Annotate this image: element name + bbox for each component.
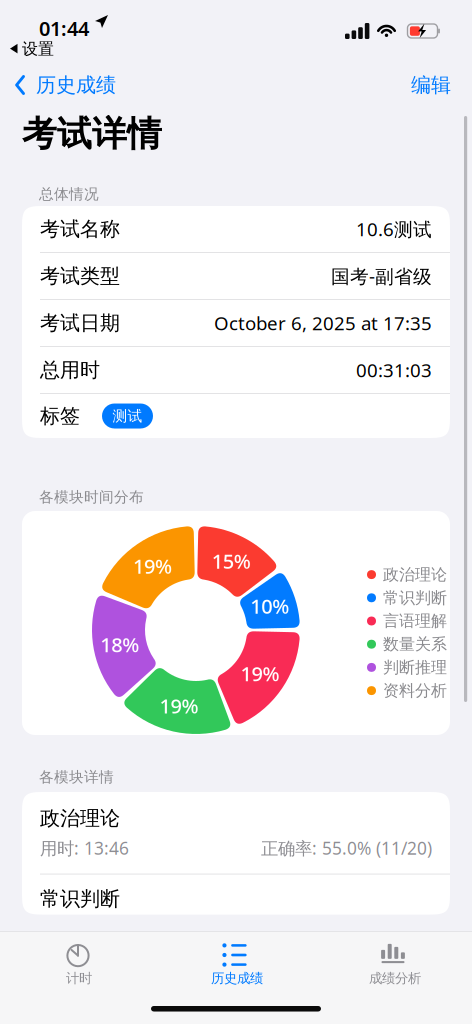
staticText: 考试名称 xyxy=(40,217,120,241)
staticText: 标签 xyxy=(40,404,80,428)
staticText: 10% xyxy=(250,593,289,619)
staticText: 00:31:03 xyxy=(356,358,432,382)
staticText: 15% xyxy=(212,548,251,574)
staticText: 政治理论 xyxy=(383,565,447,584)
staticText: 判断推理 xyxy=(383,658,447,677)
staticText: 历史成绩 xyxy=(211,970,263,986)
staticText: 18% xyxy=(100,631,139,658)
staticText: 历史成绩 xyxy=(36,73,116,97)
staticText: 国考-副省级 xyxy=(331,264,432,288)
staticText: 计时 xyxy=(66,970,92,986)
staticText: 测试 xyxy=(112,407,142,425)
staticText: 编辑 xyxy=(411,73,451,97)
staticText: 用时: 13:46 xyxy=(40,837,129,860)
staticText: 总用时 xyxy=(40,358,100,382)
staticText: 考试类型 xyxy=(40,264,120,288)
staticText: 19% xyxy=(241,660,280,687)
staticText: 言语理解 xyxy=(383,611,447,631)
staticText: 成绩分析 xyxy=(369,970,421,986)
staticText: 考试日期 xyxy=(40,311,120,335)
staticText: 10.6测试 xyxy=(356,217,432,241)
staticText: 常识判断 xyxy=(383,588,447,608)
button[interactable]: 历史成绩 xyxy=(157,932,315,994)
staticText: 正确率: 55.0% (11/20) xyxy=(261,837,432,860)
staticText: 19% xyxy=(160,692,199,719)
button[interactable]: 编辑 xyxy=(390,63,472,107)
staticText: October 6, 2025 at 17:35 xyxy=(214,311,432,335)
staticText: 设置 xyxy=(22,39,54,59)
staticText: 常识判断 xyxy=(40,887,120,911)
staticText: 数量关系 xyxy=(383,634,447,654)
staticText: 各模块详情 xyxy=(39,768,114,786)
staticText: 01:44 xyxy=(39,15,89,42)
staticText: 总体情况 xyxy=(39,185,99,203)
staticText: 各模块时间分布 xyxy=(39,488,144,506)
staticText: 考试详情 xyxy=(22,113,162,155)
staticText: 19% xyxy=(133,553,172,579)
button[interactable]: 历史成绩 xyxy=(0,63,128,107)
staticText: 资料分析 xyxy=(383,681,447,700)
button[interactable]: 计时 xyxy=(0,932,157,994)
staticText: 政治理论 xyxy=(40,806,120,831)
button[interactable]: 成绩分析 xyxy=(315,932,472,994)
